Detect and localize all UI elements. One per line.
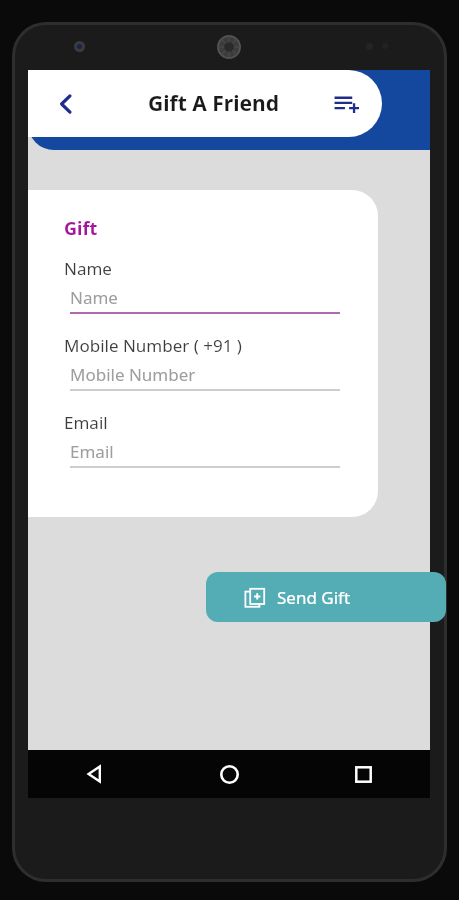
button[interactable]: Add to list (324, 82, 368, 126)
button[interactable]: Send Gift (206, 572, 446, 622)
button[interactable]: Email (70, 440, 340, 470)
staticText: Email (70, 440, 114, 463)
button[interactable]: Name (70, 286, 340, 316)
staticText: Gift A Friend (148, 89, 279, 118)
button[interactable]: Recent apps (296, 750, 430, 798)
staticText: Gift (64, 216, 98, 241)
button[interactable]: Home (162, 750, 296, 798)
staticText: Name (70, 286, 118, 309)
button[interactable]: Mobile Number (70, 363, 340, 393)
staticText: Mobile Number ( +91 ) (64, 334, 242, 357)
staticText: Send Gift (277, 586, 351, 609)
button[interactable]: Back (28, 750, 162, 798)
staticText: Name (64, 257, 112, 280)
staticText: Mobile Number (70, 363, 196, 386)
staticText: Email (64, 411, 108, 434)
button[interactable]: Back (44, 82, 88, 126)
